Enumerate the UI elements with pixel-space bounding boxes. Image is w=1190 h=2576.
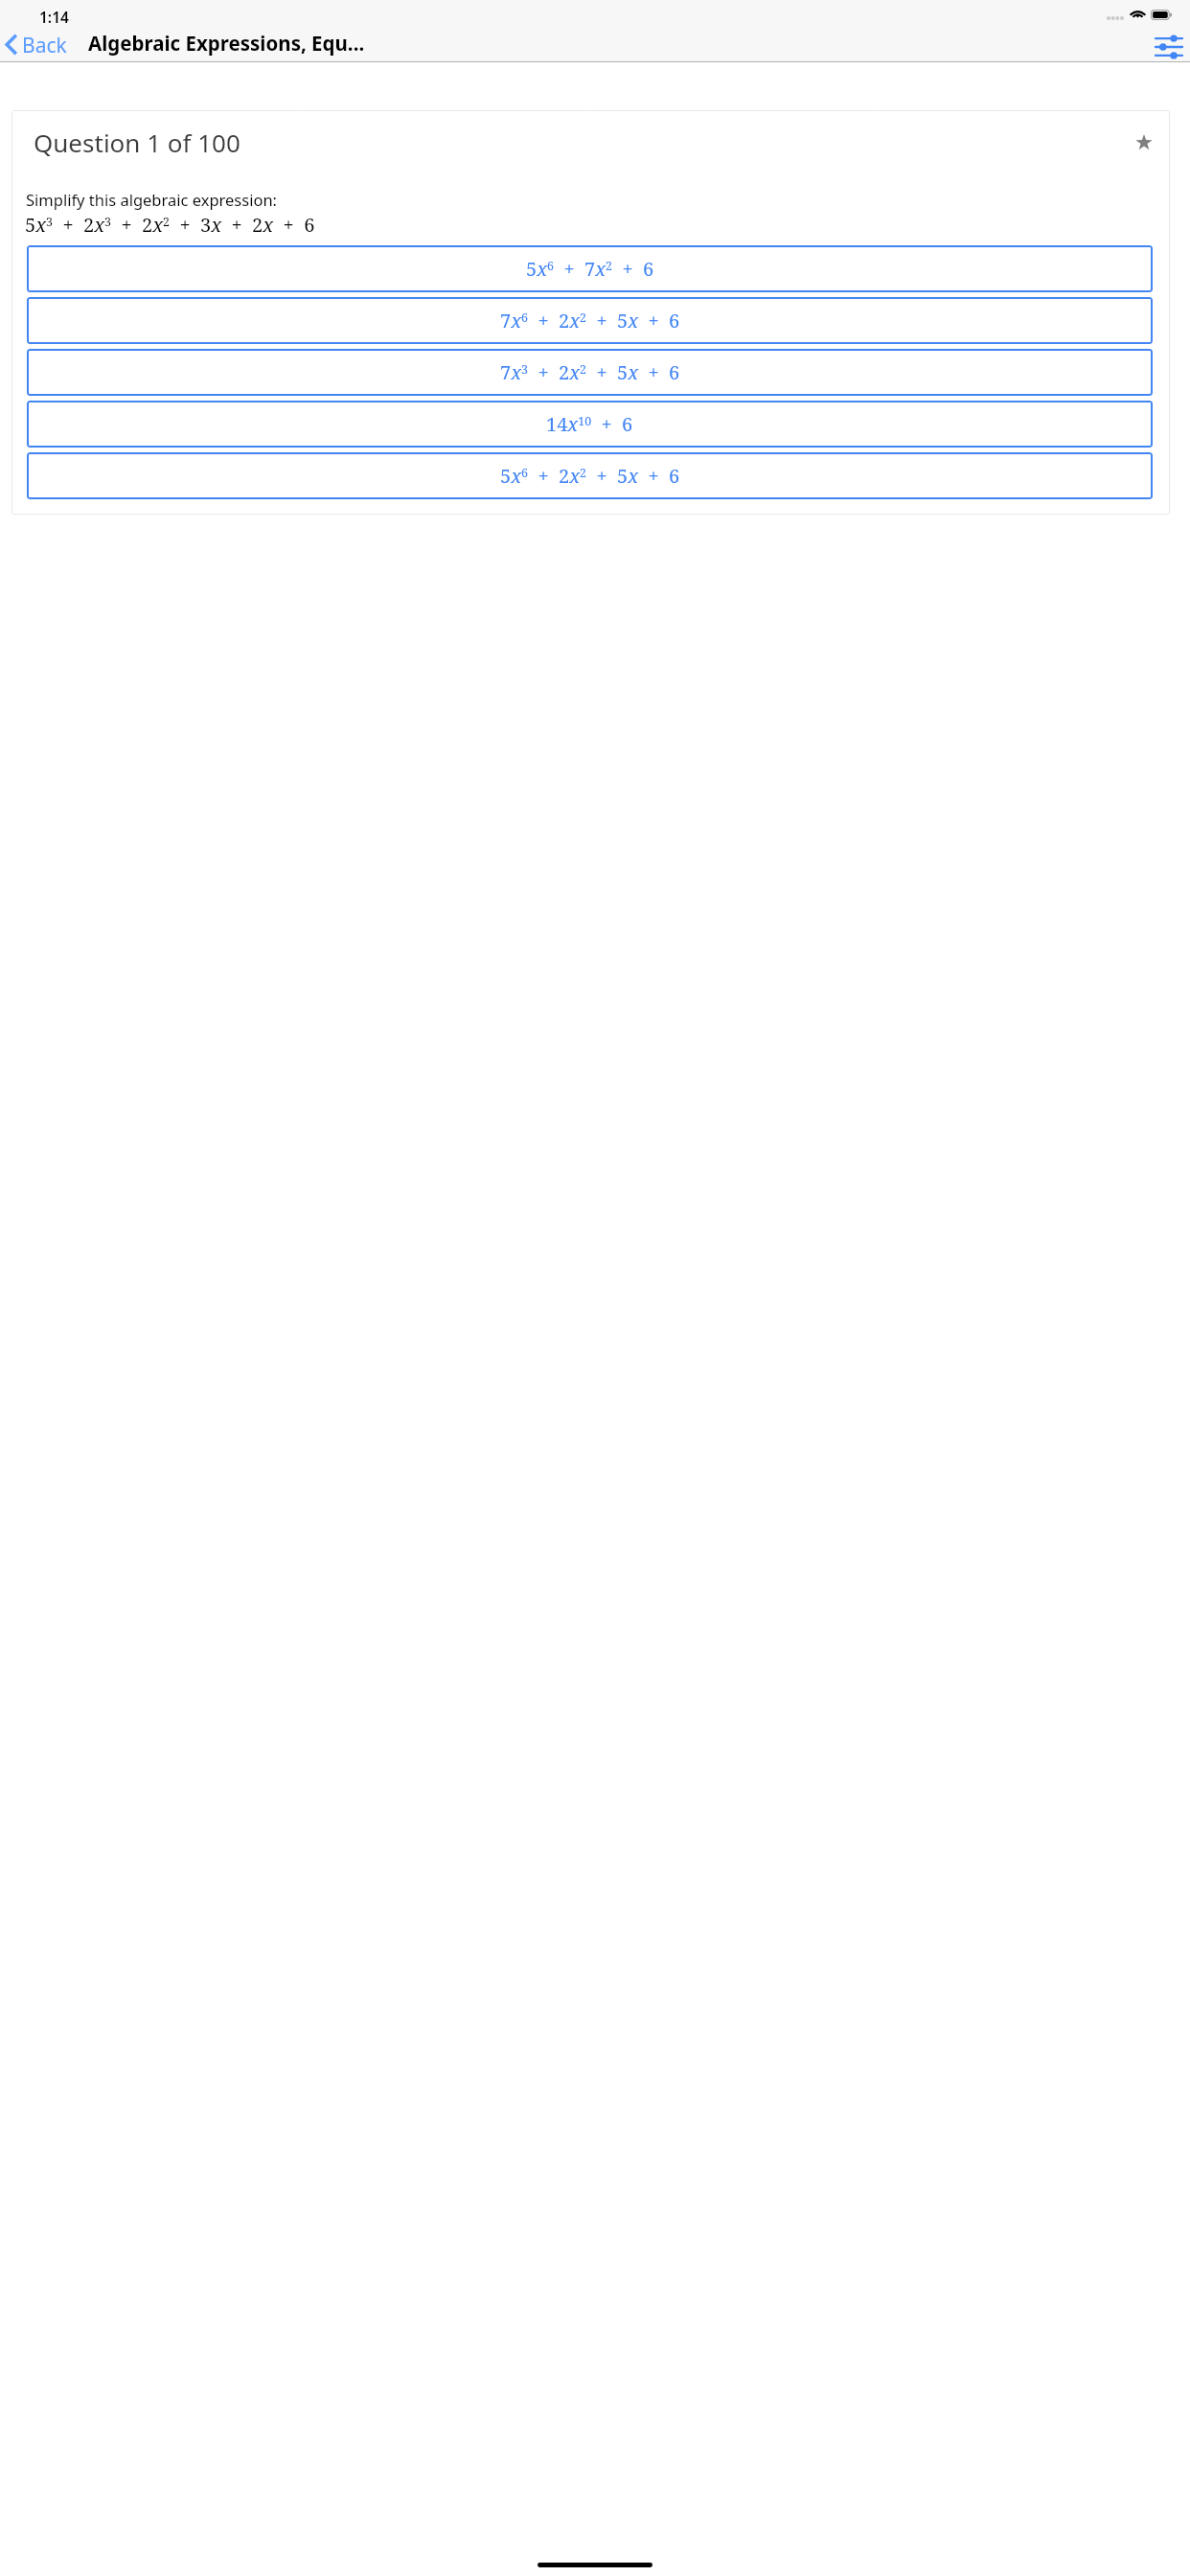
button[interactable]: 7x6 + 2x2 + 5x + 6 (27, 297, 1153, 344)
button[interactable]: 5x6 + 7x2 + 6 (27, 245, 1153, 292)
staticText: 5x3 + 2x3 + 2x2 + 3x + 2x + 6 (25, 212, 315, 238)
staticText: Question 1 of 100 (34, 126, 240, 159)
button[interactable]: 7x3 + 2x2 + 5x + 6 (27, 349, 1153, 396)
button[interactable]: Back (5, 32, 67, 59)
button[interactable]: Favourite (1135, 134, 1153, 151)
staticText: Simplify this algebraic expression: (26, 189, 278, 210)
button[interactable]: Settings (1156, 35, 1182, 58)
staticText: 1:14 (39, 7, 69, 27)
button[interactable]: 5x6 + 2x2 + 5x + 6 (27, 452, 1153, 499)
staticText: 5x6 + 7x2 + 6 (526, 256, 654, 282)
staticText: Algebraic Expressions, Equ... (88, 30, 365, 57)
staticText: 5x6 + 2x2 + 5x + 6 (500, 463, 680, 489)
staticText: 14x10 + 6 (546, 411, 633, 437)
staticText: Back (22, 32, 67, 59)
staticText: 7x3 + 2x2 + 5x + 6 (500, 359, 680, 385)
staticText: 7x6 + 2x2 + 5x + 6 (500, 308, 680, 333)
button[interactable]: 14x10 + 6 (27, 401, 1153, 448)
